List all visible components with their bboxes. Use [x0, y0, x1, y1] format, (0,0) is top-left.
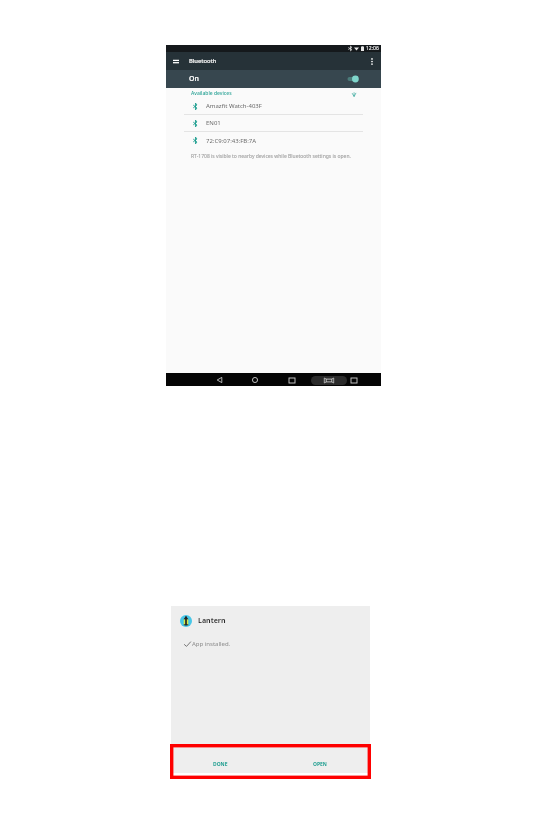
staticText: RT-1708 is visible to nearby devices whi…	[191, 153, 351, 160]
button[interactable]: Recent apps	[283, 375, 301, 385]
staticText: Available devices	[191, 90, 232, 97]
button[interactable]: Scanning	[349, 88, 359, 98]
staticText: DONE	[213, 761, 228, 768]
button[interactable]: Resize window	[311, 376, 347, 385]
staticText: On	[189, 74, 199, 84]
button[interactable]: Home	[246, 375, 264, 385]
button[interactable]: 72:C9:07:43:FB:7A	[166, 132, 381, 149]
staticText: Bluetooth	[189, 57, 217, 65]
staticText: App installed.	[192, 640, 231, 648]
staticText: Lantern	[198, 616, 226, 626]
button[interactable]: Open navigation menu	[170, 55, 182, 67]
staticText: Amazfit Watch-403F	[206, 102, 262, 110]
staticText: OPEN	[313, 761, 327, 768]
staticText: 12:06	[366, 45, 379, 52]
button[interactable]: EN01	[166, 115, 381, 131]
staticText: 72:C9:07:43:FB:7A	[206, 137, 257, 145]
staticText: EN01	[206, 119, 221, 127]
button[interactable]: Bluetooth on/off	[347, 73, 367, 85]
button[interactable]: More options	[365, 54, 379, 68]
button[interactable]: DONE	[171, 748, 270, 773]
button[interactable]: Back	[210, 375, 228, 385]
button[interactable]: OPEN	[270, 748, 370, 773]
button[interactable]: On	[166, 70, 381, 88]
button[interactable]: Rotate screen	[345, 375, 363, 385]
button[interactable]: Amazfit Watch-403F	[166, 98, 381, 114]
